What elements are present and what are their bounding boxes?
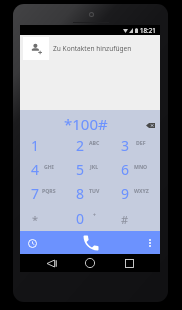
staticText: *100# [64, 114, 108, 134]
staticText: 7 [31, 184, 40, 203]
button[interactable]: Zu Kontakten hinzufügen [20, 35, 160, 61]
staticText: 1 [31, 136, 40, 155]
button[interactable]: 4 [20, 157, 66, 181]
button[interactable]: 6 [113, 157, 160, 181]
staticText: TUV [89, 187, 100, 194]
staticText: GHI [44, 163, 54, 170]
button[interactable]: * [20, 206, 66, 231]
staticText: 6 [121, 160, 130, 179]
staticText: 2 [76, 136, 85, 155]
button[interactable]: 9 [113, 181, 160, 206]
button[interactable]: 7 [20, 181, 66, 206]
staticText: 3 [121, 136, 130, 155]
button[interactable]: Home [82, 255, 98, 271]
button[interactable]: 8 [66, 181, 113, 206]
button[interactable]: # [113, 206, 160, 231]
staticText: 8 [76, 184, 85, 203]
button[interactable]: Recents [121, 255, 137, 271]
button[interactable]: Backspace [141, 116, 159, 134]
staticText: ABC [89, 139, 100, 146]
staticText: # [121, 212, 129, 227]
staticText: MNO [134, 163, 148, 170]
button[interactable]: 0 [66, 206, 113, 231]
button[interactable]: 3 [113, 133, 160, 157]
button[interactable]: Call history [23, 234, 41, 252]
staticText: DEF [136, 139, 146, 146]
staticText: 0 [76, 209, 85, 228]
staticText: Zu Kontakten hinzufügen [53, 44, 132, 53]
staticText: + [93, 212, 96, 219]
button[interactable]: Back [44, 255, 60, 271]
staticText: 5 [76, 160, 85, 179]
button[interactable]: 5 [66, 157, 113, 181]
button[interactable]: More options [141, 234, 159, 252]
staticText: 4 [31, 160, 40, 179]
button[interactable]: 1 [20, 133, 66, 157]
button[interactable]: 2 [66, 133, 113, 157]
staticText: 9 [121, 184, 130, 203]
staticText: WXYZ [134, 187, 149, 194]
button[interactable]: Call [79, 231, 103, 254]
staticText: * [32, 212, 39, 227]
staticText: JKL [90, 163, 99, 170]
staticText: PQRS [42, 187, 56, 194]
staticText: 18:21 [140, 26, 156, 34]
